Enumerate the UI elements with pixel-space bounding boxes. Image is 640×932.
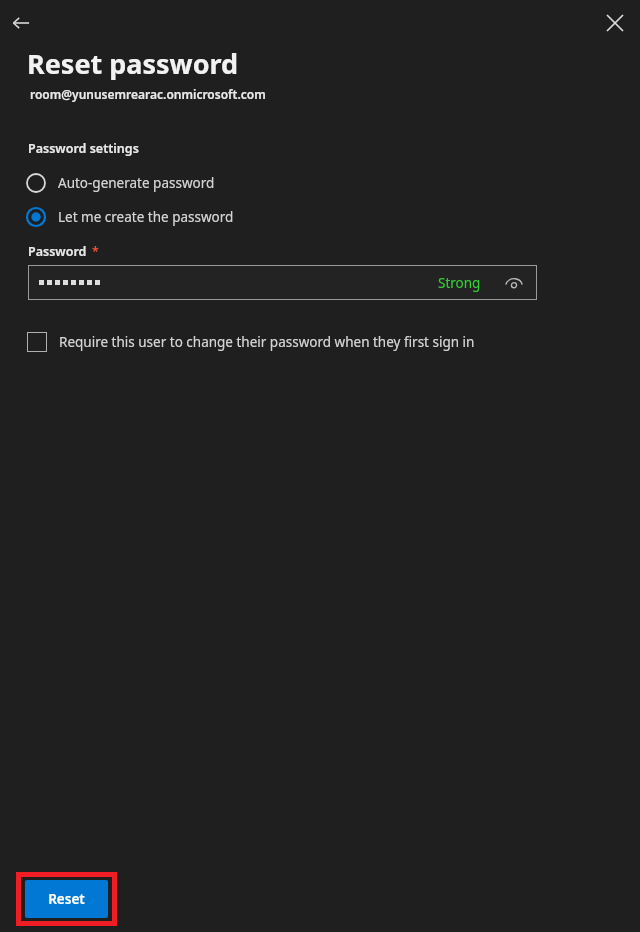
staticText: Strong xyxy=(438,274,481,292)
button[interactable]: Show password xyxy=(499,268,529,298)
staticText: Require this user to change their passwo… xyxy=(59,333,475,351)
staticText: room@yunusemrearac.onmicrosoft.com xyxy=(30,86,266,102)
staticText: Password xyxy=(28,243,87,260)
staticText: * xyxy=(92,243,99,260)
staticText: Password settings xyxy=(28,140,139,157)
staticText: Let me create the password xyxy=(58,208,234,226)
staticText: Reset password xyxy=(27,45,239,82)
button[interactable]: Require this user to change their passwo… xyxy=(27,328,475,355)
staticText: Auto-generate password xyxy=(58,174,215,192)
button[interactable]: Back xyxy=(4,6,38,40)
button[interactable]: Reset xyxy=(25,880,108,918)
button[interactable]: Let me create the password xyxy=(26,205,234,229)
staticText: Reset xyxy=(48,890,85,908)
button[interactable]: Auto-generate password xyxy=(26,171,215,195)
button[interactable]: Strong xyxy=(28,265,537,300)
button[interactable]: Close xyxy=(598,6,632,40)
